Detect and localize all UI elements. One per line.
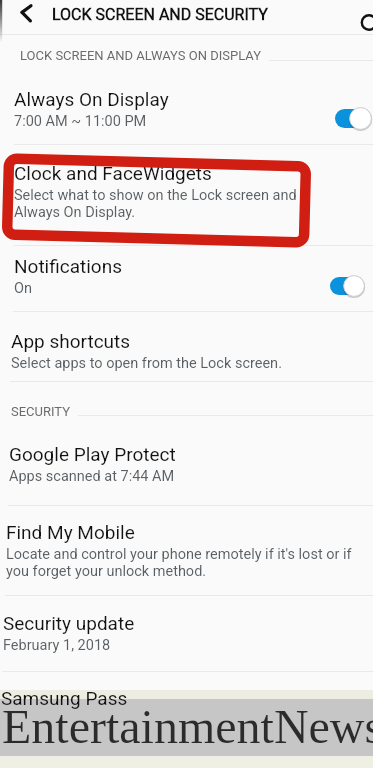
staticText: LOCK SCREEN AND SECURITY xyxy=(52,5,268,24)
staticText: February 1, 2018 xyxy=(3,637,111,654)
staticText: Locate and control your phone remotely i… xyxy=(6,546,352,580)
staticText: Find My Mobile xyxy=(6,521,135,543)
staticText: Select what to show on the Lock screen a… xyxy=(14,187,297,221)
staticText: Notifications xyxy=(14,255,123,277)
staticText: Clock and FaceWidgets xyxy=(14,162,212,184)
button[interactable] xyxy=(0,145,373,244)
button[interactable] xyxy=(0,314,373,382)
button[interactable]: Notifications toggle xyxy=(322,267,371,305)
staticText: Security update xyxy=(3,612,135,634)
staticText: App shortcuts xyxy=(11,330,131,352)
button[interactable]: Search xyxy=(352,2,373,32)
staticText: On xyxy=(14,280,32,297)
staticText: SECURITY xyxy=(11,404,71,419)
button[interactable] xyxy=(0,598,373,670)
staticText: Google Play Protect xyxy=(9,443,176,465)
button[interactable] xyxy=(0,508,373,594)
staticText: Always On Display xyxy=(14,88,169,110)
staticText: Apps scanned at 7:44 AM xyxy=(9,468,175,485)
button[interactable]: Always On Display toggle xyxy=(327,99,373,138)
button[interactable] xyxy=(0,248,373,310)
button[interactable] xyxy=(0,675,373,712)
staticText: Samsung Pass xyxy=(1,687,128,709)
staticText: Select apps to open from the Lock screen… xyxy=(11,355,282,372)
button[interactable]: Back xyxy=(12,1,44,33)
staticText: EntertainmentNews xyxy=(2,700,373,753)
staticText: 7:00 AM ~ 11:00 PM xyxy=(14,113,147,130)
staticText: LOCK SCREEN AND ALWAYS ON DISPLAY xyxy=(20,48,261,63)
button[interactable] xyxy=(0,70,373,140)
button[interactable] xyxy=(0,425,373,504)
